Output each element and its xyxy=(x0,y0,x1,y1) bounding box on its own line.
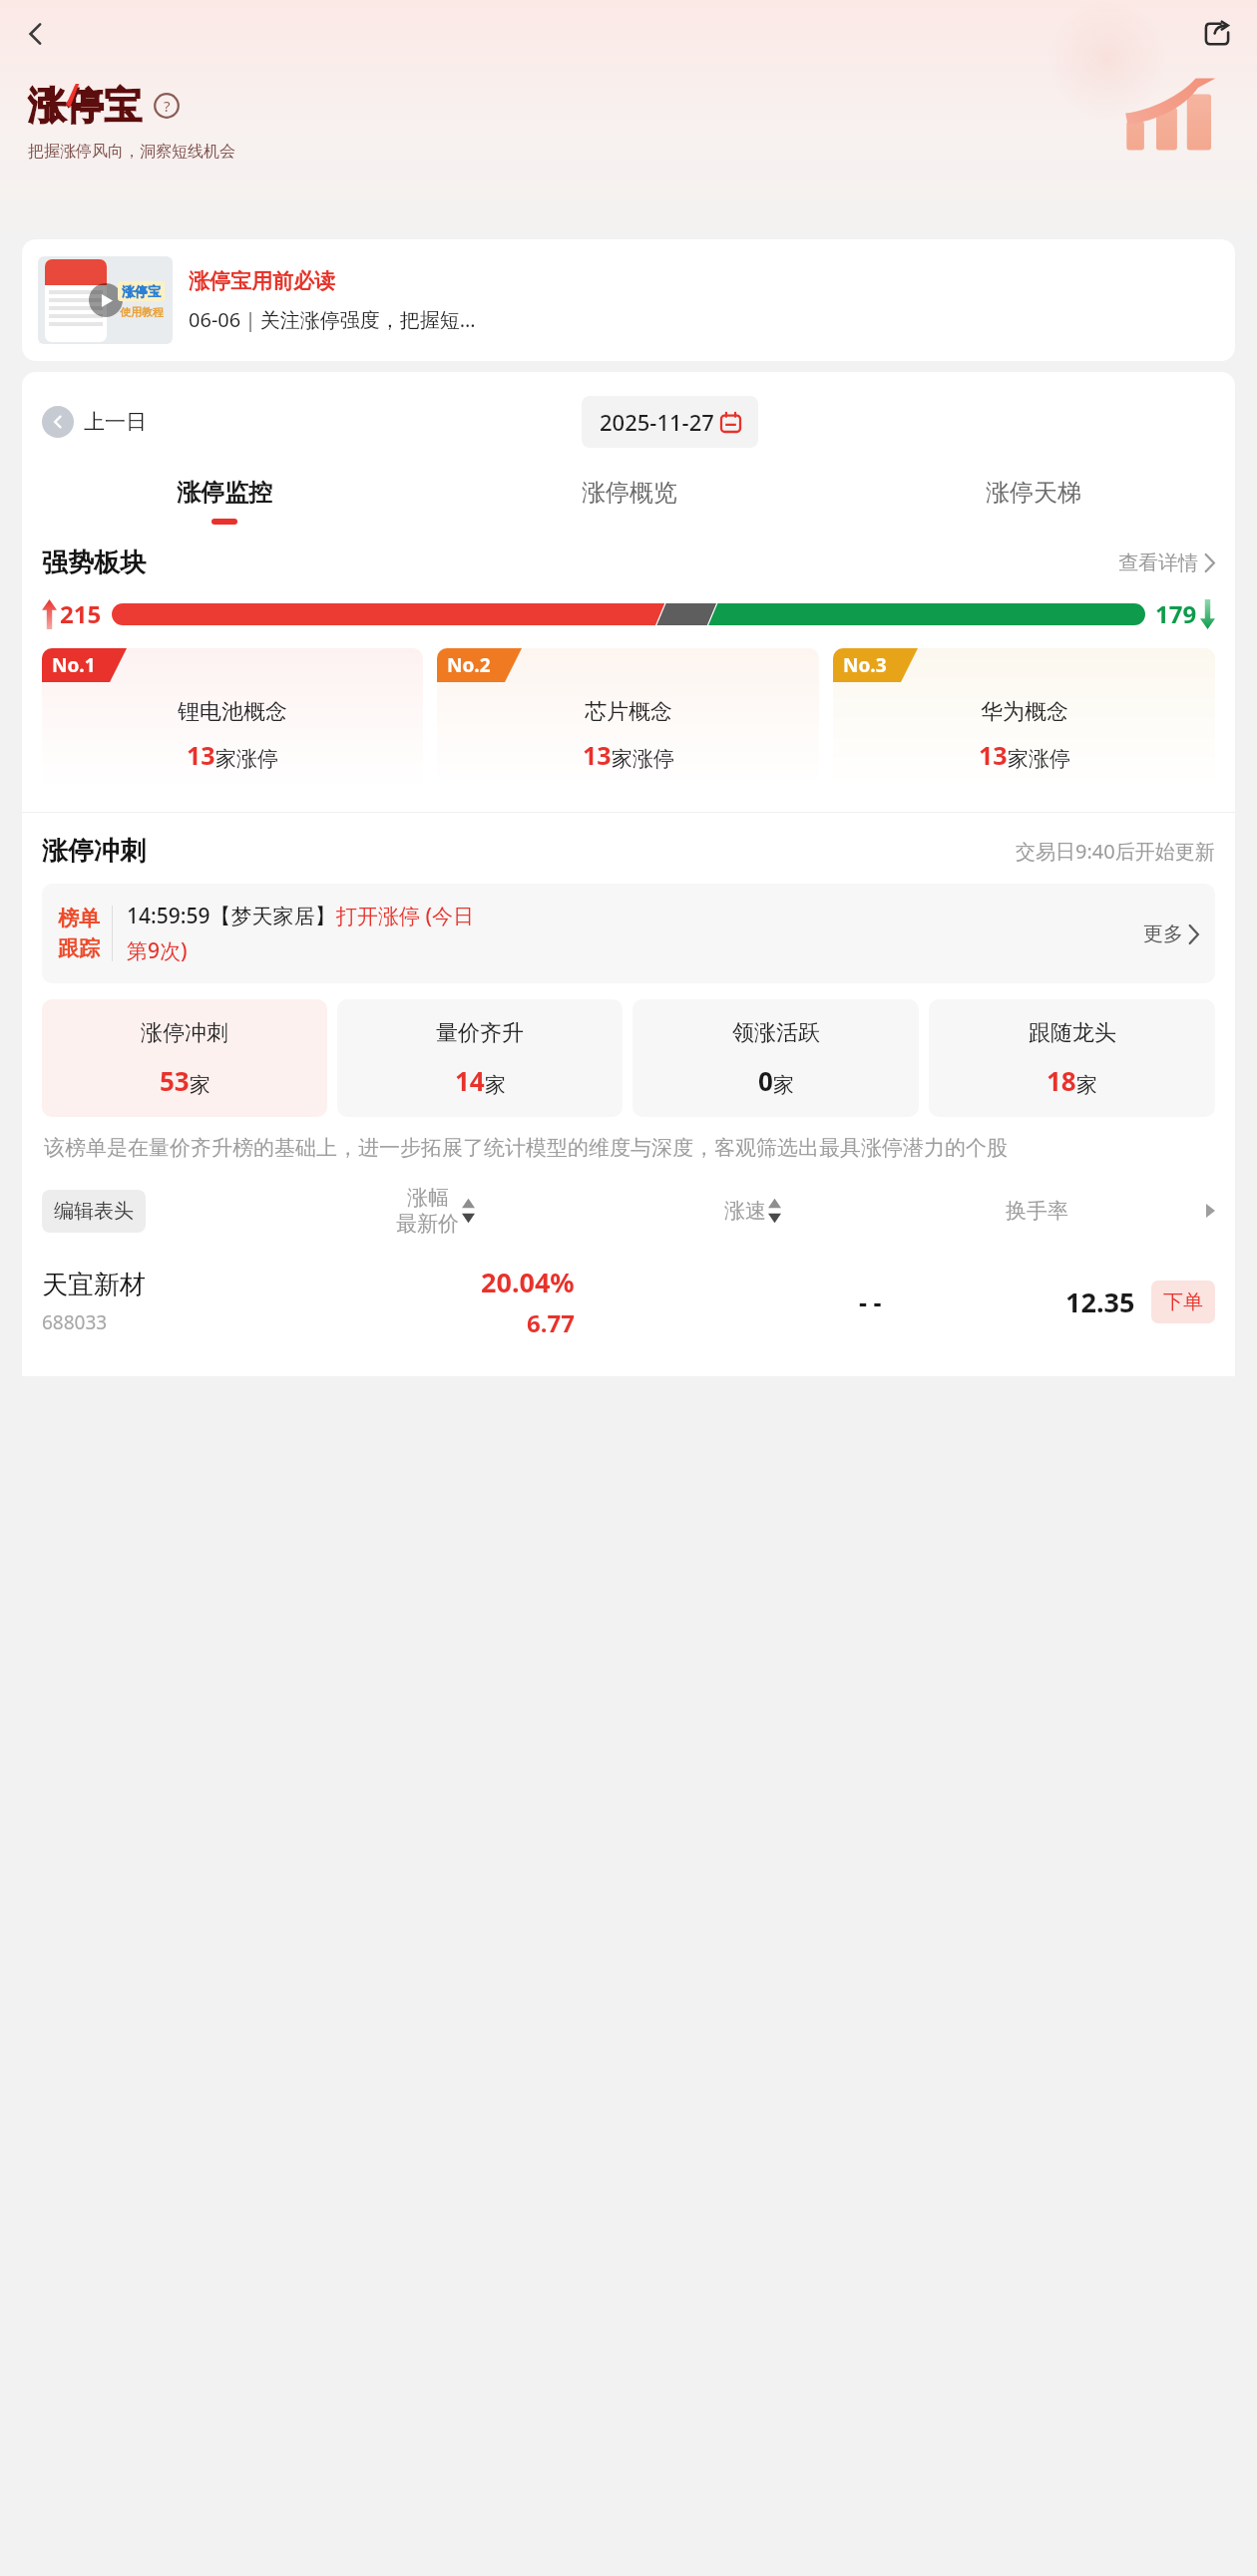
button[interactable]: 天宜新材 xyxy=(42,1247,1215,1356)
button[interactable]: 领涨活跃 xyxy=(632,999,919,1117)
staticText: 53 xyxy=(160,1063,190,1098)
button[interactable]: 跟随龙头 xyxy=(929,999,1215,1117)
staticText: 家涨停 xyxy=(612,746,674,772)
staticText: 2025-11-27 xyxy=(600,407,714,437)
staticText: 涨停冲刺 xyxy=(141,1019,228,1047)
staticText: 涨停宝用前必读 xyxy=(189,268,335,294)
button[interactable]: 交易日9:40后开始更新 xyxy=(1016,838,1215,865)
staticText: 215 xyxy=(60,597,102,630)
staticText: ? xyxy=(164,96,171,116)
staticText: 涨停宝 xyxy=(122,283,161,299)
button[interactable]: Share xyxy=(1189,6,1245,62)
button[interactable]: 查看详情 xyxy=(1118,551,1215,575)
staticText: 量价齐升 xyxy=(436,1019,524,1047)
button[interactable]: 涨幅 xyxy=(396,1185,475,1237)
button[interactable]: 下单 xyxy=(1151,1281,1215,1323)
staticText: 179 xyxy=(1155,597,1197,630)
staticText: No.1 xyxy=(52,652,96,678)
staticText: 13 xyxy=(979,738,1008,772)
staticText: 下单 xyxy=(1163,1289,1203,1314)
staticText: 涨停概览 xyxy=(582,478,677,508)
staticText: 打开涨停 (今日 xyxy=(336,902,475,930)
staticText: 强势板块 xyxy=(42,547,146,579)
staticText: 0 xyxy=(758,1063,773,1098)
button[interactable]: No.3 xyxy=(833,648,1215,788)
button[interactable]: No.1 xyxy=(42,648,423,788)
staticText: 最新价 xyxy=(396,1211,459,1237)
button[interactable]: 榜单 xyxy=(42,884,1215,983)
staticText: 天宜新材 xyxy=(42,1269,146,1301)
staticText: 涨停监控 xyxy=(177,478,272,508)
staticText: 查看详情 xyxy=(1118,551,1198,575)
staticText: 涨停天梯 xyxy=(986,478,1081,508)
button[interactable]: 涨速 xyxy=(724,1197,781,1225)
button[interactable]: 涨停宝 xyxy=(22,239,1235,361)
staticText: 6.77 xyxy=(527,1306,575,1339)
staticText: 涨幅 xyxy=(407,1185,449,1211)
staticText: 14 xyxy=(455,1063,485,1098)
staticText: 涨速 xyxy=(724,1198,766,1224)
button[interactable]: 量价齐升 xyxy=(337,999,623,1117)
button[interactable]: 涨停监控 xyxy=(22,474,427,529)
staticText: - - xyxy=(859,1285,882,1318)
button[interactable]: No.2 xyxy=(437,648,819,788)
staticText: 把握涨停风向，洞察短线机会 xyxy=(28,142,235,162)
staticText: 编辑表头 xyxy=(54,1199,134,1224)
staticText: 14:59:59【梦天家居】 xyxy=(127,902,336,930)
button[interactable]: 上一日 xyxy=(42,406,147,438)
staticText: 家 xyxy=(485,1072,506,1098)
staticText: 家涨停 xyxy=(1008,746,1070,772)
staticText: 跟踪 xyxy=(58,935,100,961)
staticText: 家 xyxy=(190,1072,210,1098)
staticText: 更多 xyxy=(1143,921,1183,946)
staticText: 12.35 xyxy=(1065,1284,1135,1320)
staticText: 华为概念 xyxy=(981,698,1068,726)
staticText: 13 xyxy=(187,738,215,772)
button[interactable]: 涨停冲刺 xyxy=(42,999,327,1117)
staticText: 家 xyxy=(773,1072,794,1098)
staticText: 18 xyxy=(1047,1063,1076,1098)
staticText: No.2 xyxy=(447,652,491,678)
staticText: 06-06｜关注涨停强度，把握短… xyxy=(189,306,476,333)
staticText: 688033 xyxy=(42,1309,108,1335)
staticText: No.3 xyxy=(843,652,887,678)
button[interactable]: 2025-11-27 xyxy=(582,396,758,448)
staticText: 跟随龙头 xyxy=(1029,1019,1116,1047)
button[interactable]: 涨停天梯 xyxy=(831,474,1235,529)
staticText: 家 xyxy=(1076,1072,1097,1098)
staticText: 13 xyxy=(583,738,612,772)
staticText: 榜单 xyxy=(58,906,100,931)
staticText: 锂电池概念 xyxy=(178,698,287,726)
staticText: 涨停冲刺 xyxy=(42,835,146,868)
staticText: 该榜单是在量价齐升榜的基础上，进一步拓展了统计模型的维度与深度，客观筛选出最具涨… xyxy=(44,1135,1008,1161)
button[interactable]: 编辑表头 xyxy=(42,1190,146,1233)
button[interactable]: 涨停概览 xyxy=(427,474,831,529)
staticText: 上一日 xyxy=(84,409,147,435)
staticText: 20.04% xyxy=(481,1264,575,1300)
staticText: 芯片概念 xyxy=(585,698,672,726)
button[interactable]: Help xyxy=(154,93,180,119)
staticText: 领涨活跃 xyxy=(732,1019,820,1047)
staticText: 使用教程 xyxy=(120,305,164,319)
button[interactable]: Back xyxy=(8,6,64,62)
staticText: 换手率 xyxy=(1006,1198,1068,1224)
staticText: 涨停宝 xyxy=(28,82,142,130)
staticText: 第9次) xyxy=(127,936,188,965)
staticText: 家涨停 xyxy=(215,746,278,772)
staticText: 交易日9:40后开始更新 xyxy=(1016,838,1215,865)
